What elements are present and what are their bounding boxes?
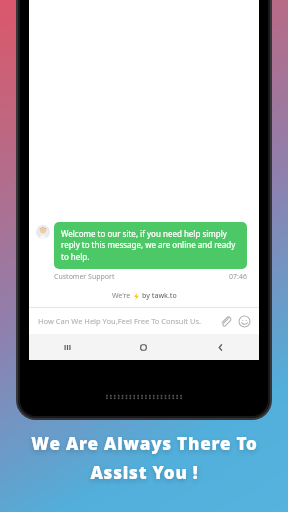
staticText: Welcome to our site, if you need help si…: [61, 228, 240, 263]
button[interactable]: Emoji: [238, 315, 251, 328]
staticText: We're: [112, 291, 131, 301]
staticText: 07:46: [229, 272, 247, 282]
staticText: by tawk.to: [142, 291, 177, 301]
staticText: We Are Always There To: [31, 432, 258, 455]
staticText: Assist You !: [90, 461, 199, 484]
button[interactable]: How Can We Help You,Feel Free To Consult…: [38, 316, 219, 326]
button[interactable]: Back: [182, 334, 259, 360]
button[interactable]: Attach file: [219, 315, 232, 328]
button[interactable]: Recent apps: [29, 334, 105, 360]
button[interactable]: Home: [105, 334, 182, 360]
button[interactable]: Welcome to our site, if you need help si…: [54, 222, 247, 269]
staticText: Customer Support: [54, 272, 115, 282]
